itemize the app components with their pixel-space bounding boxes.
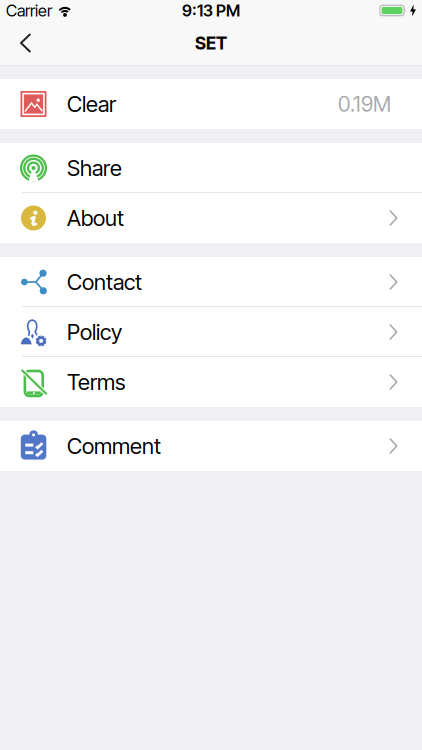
button[interactable]: Comment [0,421,422,471]
staticText: Contact [67,269,142,295]
button[interactable]: Share [0,143,422,193]
staticText: Clear [67,91,116,117]
staticText: Share [67,155,122,181]
staticText: Comment [67,433,161,459]
staticText: Policy [67,319,122,345]
button[interactable]: About [0,193,422,243]
staticText: 0.19M [338,91,391,117]
button[interactable]: Terms [0,357,422,407]
staticText: Carrier [6,1,52,20]
button[interactable]: Clear [0,79,422,129]
staticText: SET [195,32,227,54]
button[interactable]: Policy [0,307,422,357]
staticText: About [67,205,124,231]
staticText: Terms [67,369,125,395]
button[interactable]: Contact [0,257,422,307]
button[interactable]: Back [0,33,45,52]
staticText: 9:13 PM [182,1,240,20]
